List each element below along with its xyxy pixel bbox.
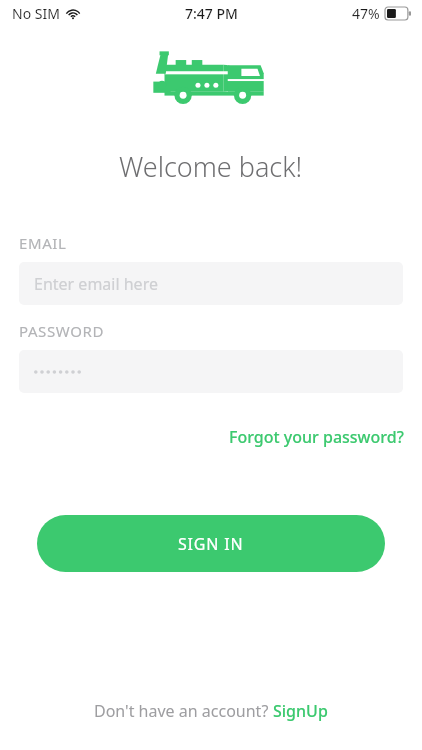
staticText: EMAIL xyxy=(19,233,67,253)
button[interactable]: Enter email here xyxy=(19,262,403,305)
staticText: Forgot your password? xyxy=(229,426,404,448)
staticText: No SIM xyxy=(12,4,60,23)
staticText: Enter email here xyxy=(34,273,158,295)
staticText: Welcome back! xyxy=(119,148,303,185)
staticText: 7:47 PM xyxy=(185,4,238,23)
staticText: Don't have an account? xyxy=(94,700,273,722)
staticText: SignUp xyxy=(273,700,328,722)
button[interactable]: Forgot your password? xyxy=(227,423,406,451)
staticText: 47% xyxy=(352,4,380,23)
button[interactable]: SignUp xyxy=(273,700,328,722)
staticText: SIGN IN xyxy=(178,533,244,555)
staticText: PASSWORD xyxy=(19,321,104,341)
button[interactable]: SIGN IN xyxy=(37,515,385,572)
